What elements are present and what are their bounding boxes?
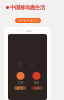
staticText: 立即 <box>17 81 23 84</box>
staticText: 立即参与领好礼 <box>17 19 38 22</box>
staticText: 分享 <box>34 86 40 90</box>
button[interactable]: 参与 <box>14 86 26 90</box>
button[interactable]: 立即 <box>14 72 27 84</box>
staticText: 中国移动惠生活 <box>10 4 45 11</box>
staticText: 参与 <box>17 86 23 90</box>
button[interactable]: 分享 <box>31 86 43 90</box>
staticText: 领取 <box>33 81 39 84</box>
button[interactable]: 领取 <box>30 72 43 84</box>
button[interactable]: 立即参与领好礼 <box>15 18 41 23</box>
